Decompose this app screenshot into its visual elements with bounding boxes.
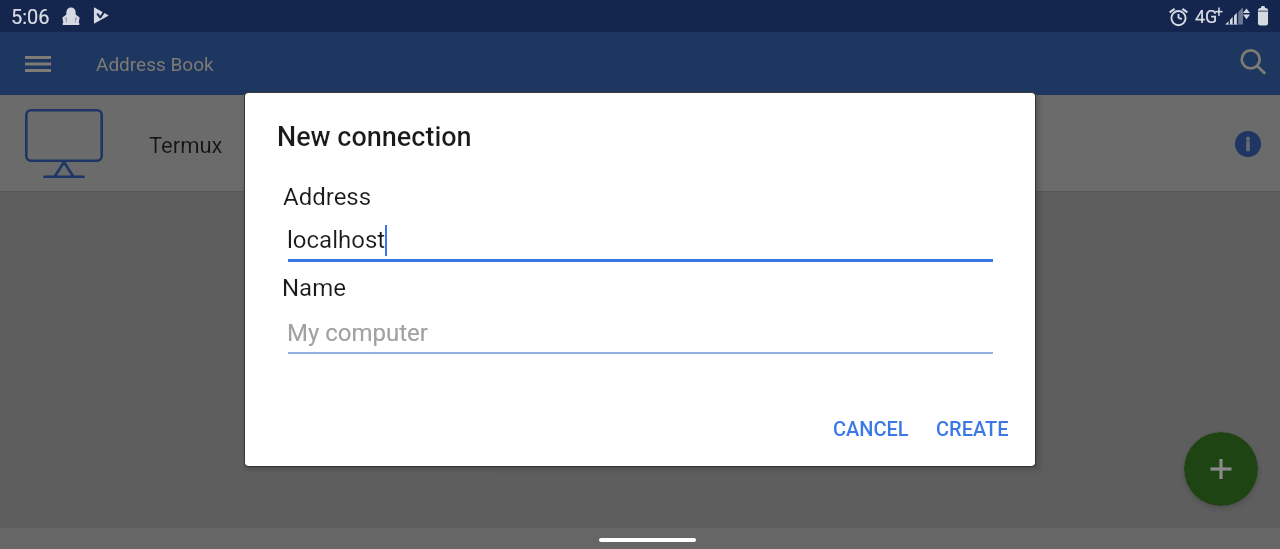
staticText: 4G bbox=[1195, 6, 1218, 27]
button[interactable]: Open navigation drawer bbox=[12, 44, 63, 84]
button[interactable]: Add connection bbox=[1184, 432, 1258, 506]
staticText: Address Book bbox=[96, 53, 214, 75]
staticText: New connection bbox=[277, 121, 472, 153]
staticText: + bbox=[1215, 4, 1223, 20]
button[interactable]: Termux bbox=[0, 95, 1280, 191]
staticText: Name bbox=[282, 274, 346, 302]
staticText: localhost bbox=[287, 226, 386, 254]
button[interactable]: CANCEL bbox=[819, 405, 923, 452]
button[interactable]: Home bbox=[599, 538, 696, 542]
button[interactable]: Search bbox=[1232, 43, 1276, 83]
staticText: My computer bbox=[287, 319, 428, 347]
button[interactable]: CREATE bbox=[922, 405, 1023, 452]
staticText: 5:06 bbox=[11, 5, 50, 28]
staticText: Address bbox=[283, 183, 372, 211]
button[interactable]: Info bbox=[1234, 130, 1262, 158]
staticText: CREATE bbox=[936, 417, 1009, 440]
staticText: CANCEL bbox=[833, 417, 909, 440]
staticText: Termux bbox=[149, 133, 223, 159]
